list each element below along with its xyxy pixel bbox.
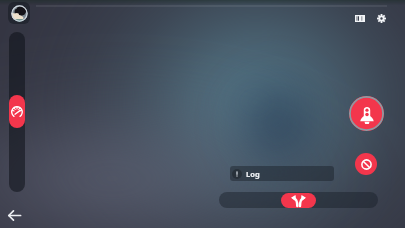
button[interactable]: Alternate routes: [281, 193, 316, 208]
button[interactable]: Settings: [371, 8, 391, 28]
staticText: Log: [246, 169, 260, 179]
button[interactable]: Launch: [349, 96, 384, 131]
button[interactable]: Speed: [9, 95, 25, 128]
button[interactable]: Block: [355, 153, 377, 175]
button[interactable]: Back: [5, 206, 24, 225]
button[interactable]: Layout: [350, 8, 370, 28]
button[interactable]: Log: [230, 166, 334, 181]
button[interactable]: Profile: [8, 2, 30, 24]
